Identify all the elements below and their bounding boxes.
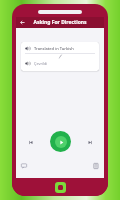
button[interactable]: Next bbox=[85, 137, 95, 147]
button[interactable]: Translated in Turkish bbox=[21, 42, 99, 71]
staticText: Translated in Turkish bbox=[34, 46, 74, 51]
button[interactable]: Home bbox=[55, 182, 66, 193]
button[interactable]: Document bbox=[91, 161, 101, 171]
button[interactable]: Play bbox=[50, 131, 71, 152]
button[interactable]: Previous bbox=[25, 137, 35, 147]
button[interactable]: Back bbox=[18, 18, 27, 27]
button[interactable]: Conversation bbox=[19, 161, 29, 171]
staticText: Asking For Directions bbox=[33, 19, 87, 26]
staticText: Çevrildi bbox=[34, 61, 48, 66]
